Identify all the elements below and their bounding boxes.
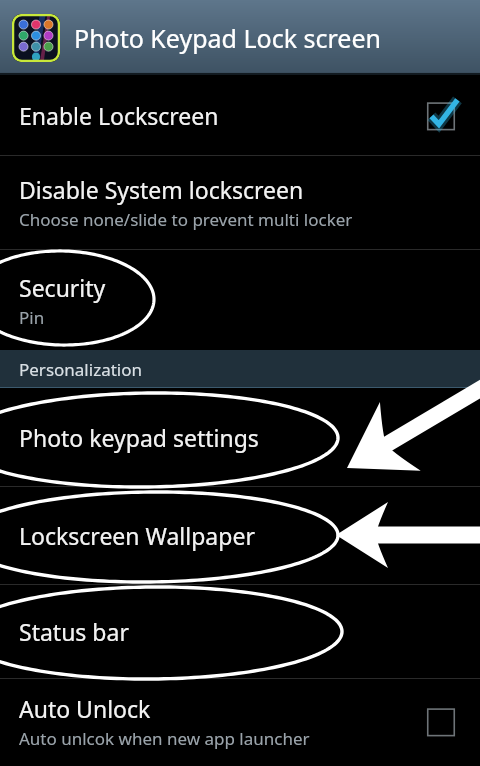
staticText: Status bar: [19, 616, 129, 647]
staticText: Auto Unlock: [19, 693, 151, 724]
staticText: Photo Keypad Lock screen: [74, 21, 381, 55]
button[interactable]: Disable System lockscreen: [0, 156, 480, 249]
staticText: Lockscreen Wallpaper: [19, 520, 255, 551]
button[interactable]: Status bar: [0, 585, 480, 678]
button[interactable]: Checked: [422, 96, 460, 134]
staticText: Pin: [19, 306, 45, 329]
button[interactable]: Enable Lockscreen: [0, 75, 480, 155]
button[interactable]: Unchecked: [422, 702, 460, 740]
button[interactable]: Lockscreen Wallpaper: [0, 487, 480, 584]
staticText: Enable Lockscreen: [19, 100, 219, 131]
button[interactable]: Auto Unlock: [0, 679, 480, 763]
button[interactable]: Photo keypad settings: [0, 388, 480, 486]
staticText: Disable System lockscreen: [19, 174, 304, 205]
staticText: Choose none/slide to prevent multi locke…: [19, 208, 353, 231]
staticText: Personalization: [19, 358, 142, 381]
staticText: Photo keypad settings: [19, 422, 259, 453]
button[interactable]: Security: [0, 250, 480, 350]
staticText: Security: [19, 272, 106, 303]
staticText: Auto unlcok when new app launcher: [19, 727, 310, 750]
